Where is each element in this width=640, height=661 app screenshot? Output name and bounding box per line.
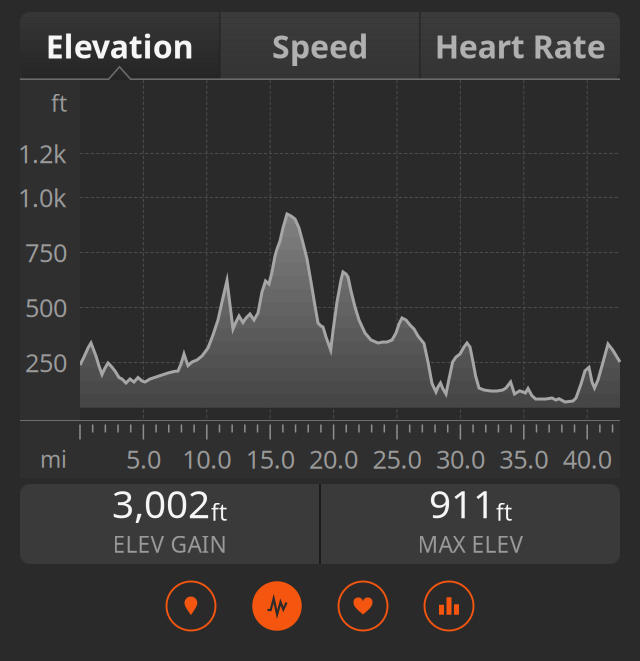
button[interactable]: Splits — [419, 576, 479, 636]
staticText: 20.0 — [309, 442, 358, 476]
staticText: Heart Rate — [435, 25, 606, 67]
button[interactable]: Map — [161, 576, 221, 636]
button[interactable]: Elevation — [20, 12, 219, 80]
staticText: 1.2k — [18, 137, 67, 170]
staticText: 250 — [25, 346, 67, 379]
staticText: 15.0 — [246, 442, 295, 476]
staticText: Speed — [272, 25, 368, 67]
staticText: 10.0 — [182, 442, 231, 476]
staticText: mi — [40, 444, 67, 474]
button[interactable]: Speed — [220, 12, 419, 80]
staticText: MAX ELEV — [417, 529, 523, 559]
staticText: ft — [496, 497, 512, 527]
button[interactable]: Heart Rate — [420, 12, 620, 80]
staticText: ft — [211, 497, 227, 527]
staticText: 25.0 — [372, 442, 421, 476]
staticText: Elevation — [46, 25, 194, 67]
button[interactable]: Heart rate — [333, 576, 393, 636]
button[interactable]: 3,002 — [20, 484, 319, 564]
staticText: 3,002 — [112, 478, 210, 529]
button[interactable]: Elevation — [247, 576, 307, 636]
staticText: 5.0 — [126, 442, 161, 476]
staticText: 40.0 — [563, 442, 612, 476]
button[interactable]: 911 — [321, 484, 620, 564]
staticText: 1.0k — [18, 181, 67, 214]
staticText: 30.0 — [436, 442, 485, 476]
staticText: 35.0 — [499, 442, 548, 476]
staticText: ELEV GAIN — [112, 529, 226, 559]
staticText: 500 — [25, 291, 67, 324]
staticText: ft — [51, 88, 67, 118]
staticText: 911 — [429, 478, 495, 529]
staticText: 750 — [25, 236, 67, 269]
